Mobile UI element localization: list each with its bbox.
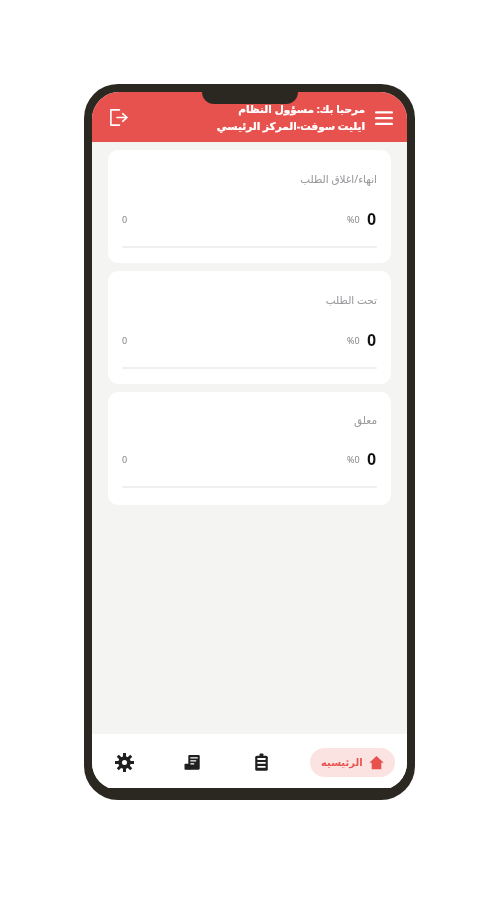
staticText: 0	[367, 448, 377, 470]
button[interactable]: Logout	[100, 99, 136, 135]
staticText: %0	[347, 453, 360, 465]
staticText: الرئيسيه	[321, 757, 363, 769]
staticText: 0	[122, 453, 128, 465]
staticText: %0	[347, 213, 360, 225]
staticText: تحت الطلب	[325, 293, 377, 307]
staticText: ايليت سوفت-المركز الرئيسي	[216, 119, 365, 133]
button[interactable]: تحت الطلب	[108, 271, 391, 384]
staticText: 0	[367, 329, 377, 351]
staticText: مرحبا بك: مسؤول النظام	[238, 102, 365, 116]
staticText: 0	[122, 213, 128, 225]
staticText: 0	[122, 334, 128, 346]
button[interactable]: Reports	[172, 742, 212, 782]
button[interactable]: الرئيسيه	[310, 748, 395, 777]
button[interactable]: Menu	[367, 100, 401, 134]
button[interactable]: انهاء/اغلاق الطلب	[108, 150, 391, 263]
button[interactable]: Tasks	[241, 742, 281, 782]
staticText: %0	[347, 334, 360, 346]
staticText: معلق	[354, 414, 377, 426]
button[interactable]: Settings	[104, 742, 144, 782]
staticText: انهاء/اغلاق الطلب	[300, 172, 377, 186]
button[interactable]: معلق	[108, 392, 391, 505]
staticText: 0	[367, 208, 377, 230]
